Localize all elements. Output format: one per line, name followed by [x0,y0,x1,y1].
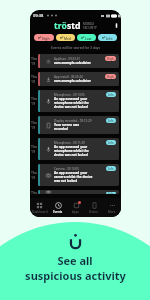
button[interactable]: Thu [30,54,121,68]
button[interactable]: Thu [30,138,121,160]
button[interactable]: Thu [30,90,121,112]
staticText: Thu [31,144,38,149]
staticText: Apps [72,210,80,214]
button[interactable]: Events [49,198,67,217]
staticText: An app accessed your microphone whilst t… [54,97,93,109]
staticText: An app accessed your microphone whilst t… [54,145,93,157]
staticText: 19 [31,175,36,180]
staticText: Info [108,141,114,145]
staticText: Thu [31,96,38,101]
staticText: An app accessed your camera whilst the d… [54,171,93,183]
button[interactable]: Thu [30,116,121,134]
staticText: Med [64,36,71,40]
button[interactable]: Low [77,34,96,41]
staticText: More [108,210,116,214]
button[interactable]: Apps [67,198,85,217]
button[interactable]: Thu [30,164,121,186]
staticText: 19 [31,61,36,66]
staticText: Info [106,36,113,40]
staticText: High [107,75,114,79]
button[interactable]: Menu [114,23,119,28]
button[interactable]: Med [56,34,75,41]
button[interactable]: Thu [30,190,121,194]
staticText: Events [53,210,63,214]
staticText: Info [108,93,114,97]
staticText: High [107,57,114,61]
staticText: High [42,36,50,40]
staticText: Microphone - 09:13:05 [54,93,85,97]
staticText: 19 [31,125,36,130]
staticText: Thu [31,170,38,175]
staticText: 19 [31,149,36,154]
staticText: Thu [31,56,38,61]
staticText: Thu [31,74,38,79]
staticText: Thu [31,120,38,125]
button[interactable]: More [103,198,121,217]
staticText: com.example.calculator [54,61,91,65]
staticText: com.example.calculator [54,79,91,83]
button[interactable]: High [34,34,54,41]
staticText: Info [108,192,114,194]
staticText: AppScan - 09:33:51 [54,57,81,61]
staticText: trö [54,20,67,31]
staticText: Dashboard [32,210,48,214]
button[interactable]: Info [98,34,117,41]
button[interactable]: Device [85,198,103,217]
staticText: 19 [31,79,36,84]
staticText: Camera - 09:10:05 [54,167,79,171]
staticText: Info [108,119,114,123]
button[interactable]: Thu [30,72,121,86]
staticText: Your screen was recorded [54,123,93,131]
staticText: Thu [31,190,38,194]
staticText: MOBILE [83,22,95,26]
staticText: Device [89,210,99,214]
staticText: std [67,20,81,31]
staticText: 19 [31,101,36,106]
staticText: Info [108,167,114,171]
staticText: Events will be stored for 3 days [51,45,101,50]
staticText: See all [57,253,93,268]
staticText: App install - 09:23:44 [54,75,83,79]
staticText: Microphone - 09:11:49 [54,141,85,145]
button[interactable]: Dashboard [30,198,49,217]
staticText: SECURITY [83,26,97,30]
staticText: Low [85,36,92,40]
staticText: 09:38 [33,13,44,18]
staticText: suspicious activity [25,268,126,283]
staticText: Display recorded - 09:12:29 [54,119,92,123]
